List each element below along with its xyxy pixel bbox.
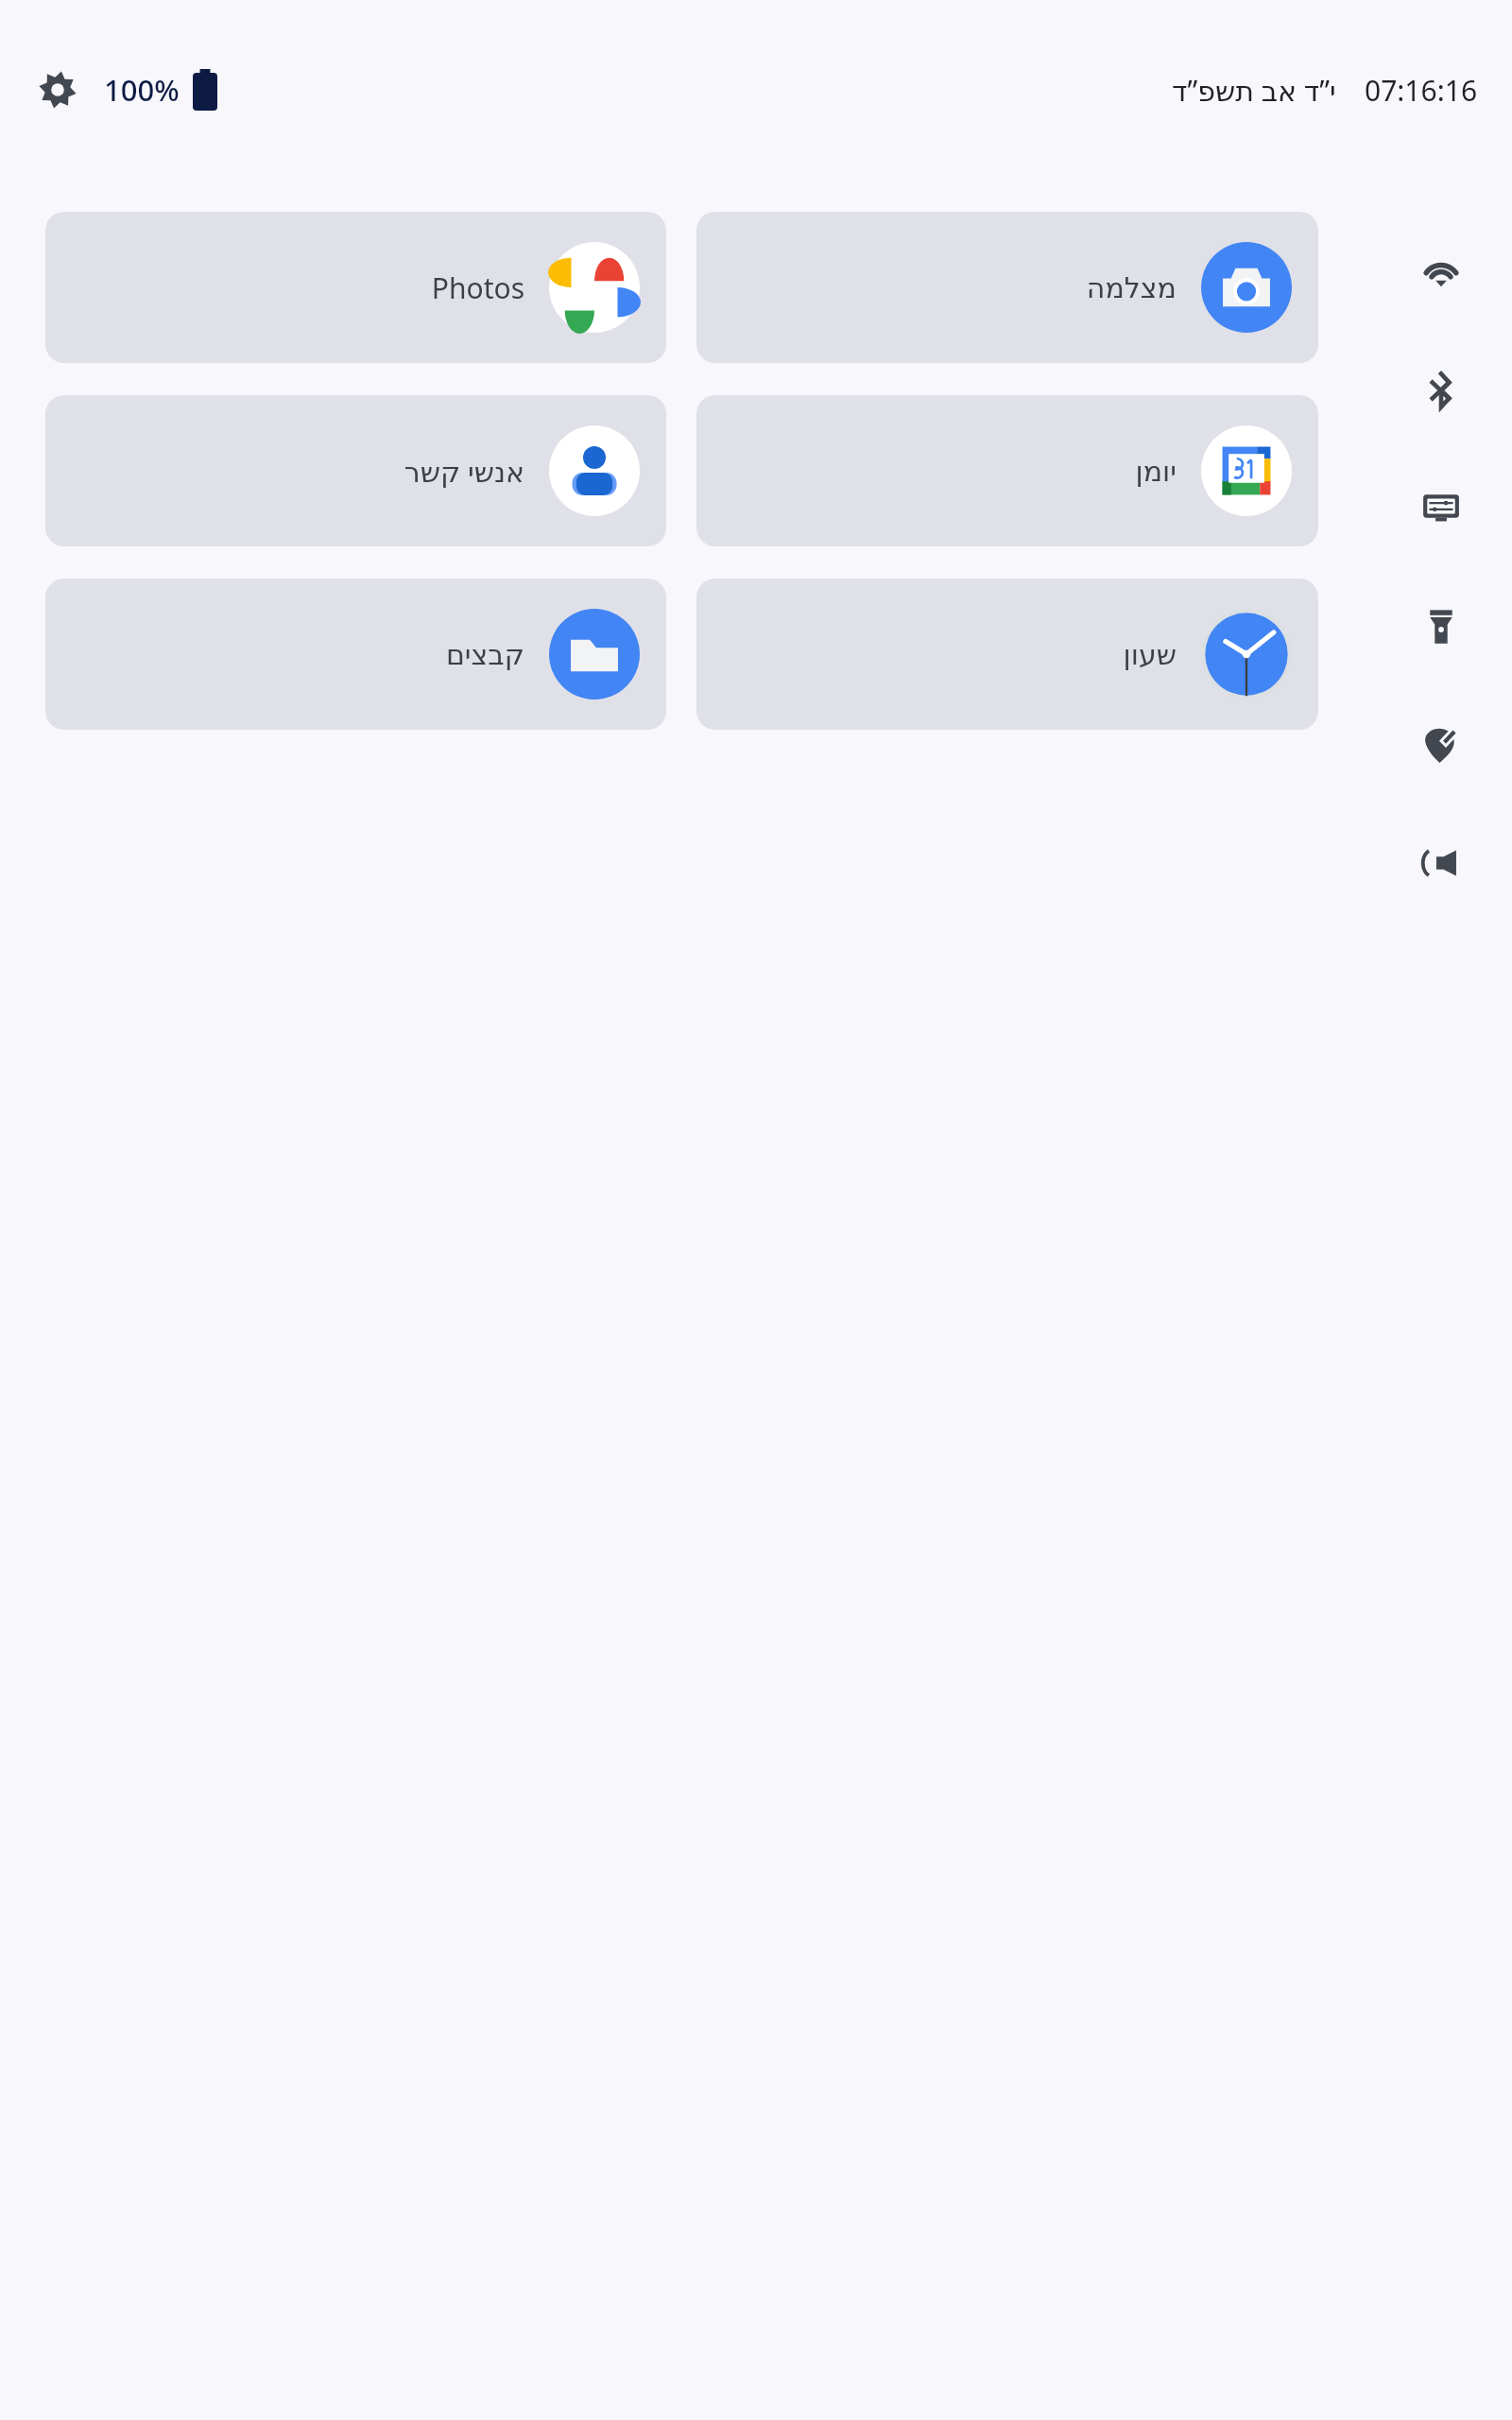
- button[interactable]: Wi-Fi: [1396, 227, 1486, 318]
- staticText: י”ד אב תשפ”ד: [1172, 71, 1336, 110]
- staticText: Photos: [431, 268, 524, 307]
- button[interactable]: Location: [1396, 700, 1486, 790]
- staticText: אנשי קשר: [404, 452, 524, 491]
- button[interactable]: יומן: [696, 395, 1318, 546]
- button[interactable]: אנשי קשר: [45, 395, 666, 546]
- button[interactable]: Flashlight: [1396, 581, 1486, 672]
- button[interactable]: מצלמה: [696, 212, 1318, 363]
- button[interactable]: Volume: [1396, 818, 1486, 908]
- button[interactable]: Settings: [32, 64, 83, 115]
- button[interactable]: קבצים: [45, 579, 666, 730]
- staticText: קבצים: [445, 638, 524, 671]
- button[interactable]: שעון: [696, 579, 1318, 730]
- button[interactable]: Bluetooth: [1396, 345, 1486, 436]
- staticText: מצלמה: [1086, 271, 1177, 304]
- button[interactable]: Display settings: [1396, 463, 1486, 554]
- staticText: שעון: [1123, 638, 1177, 671]
- staticText: 100%: [104, 70, 180, 110]
- staticText: 07:16:16: [1365, 71, 1478, 110]
- button[interactable]: Photos: [45, 212, 666, 363]
- staticText: יומן: [1135, 455, 1177, 488]
